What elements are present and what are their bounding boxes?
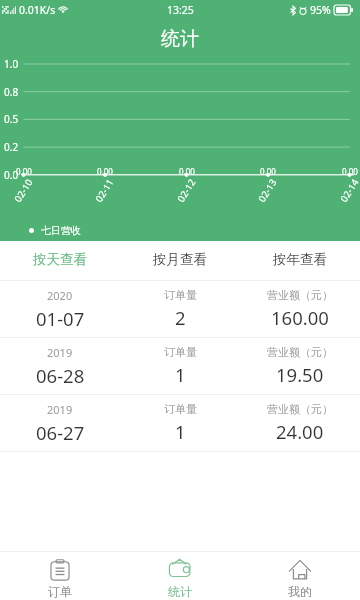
button[interactable]: 统计 [120, 552, 240, 600]
button[interactable]: 2019 [0, 338, 360, 394]
staticText: 0.5 [4, 112, 19, 126]
staticText: 0.8 [4, 85, 19, 99]
staticText: 订单量 [164, 345, 197, 359]
staticText: 我的 [288, 584, 312, 599]
staticText: 按天查看 [33, 251, 87, 268]
staticText: 19.50 [276, 362, 324, 387]
staticText: 0.01K/s [19, 3, 56, 17]
staticText: 1 [175, 419, 186, 444]
staticText: 02-12 [174, 176, 199, 205]
staticText: 按年查看 [273, 251, 327, 268]
staticText: 02-13 [255, 176, 280, 205]
staticText: 1 [175, 362, 186, 387]
staticText: 0.00 [97, 166, 113, 177]
staticText: 统计 [0, 27, 360, 51]
staticText: 02-11 [92, 176, 117, 205]
staticText: 0.00 [260, 166, 276, 177]
staticText: 0.2 [4, 140, 19, 154]
button[interactable]: 我的 [240, 552, 360, 600]
button[interactable]: 按天查看 [0, 241, 120, 280]
staticText: 2019 [47, 402, 73, 417]
staticText: 02-10 [11, 176, 36, 205]
button[interactable]: 2019 [0, 395, 360, 451]
staticText: 2019 [47, 345, 73, 360]
other: 统计 [169, 558, 191, 580]
staticText: 0.00 [179, 166, 195, 177]
staticText: 13:25 [167, 3, 194, 17]
button[interactable]: 按月查看 [120, 241, 240, 280]
button[interactable]: 按年查看 [240, 241, 360, 280]
button[interactable]: 订单 [0, 552, 120, 600]
staticText: 七日营收 [41, 224, 81, 237]
staticText: 营业额（元） [267, 288, 333, 302]
staticText: 01-07 [36, 306, 85, 331]
staticText: 订单量 [164, 288, 197, 302]
other: 订单 [49, 558, 71, 580]
staticText: 02-14 [337, 176, 360, 205]
staticText: 0.0 [4, 168, 19, 182]
other: 我的 [289, 558, 311, 580]
staticText: 06-27 [36, 420, 85, 445]
staticText: 订单 [48, 584, 72, 599]
staticText: 95% [310, 3, 331, 17]
staticText: 按月查看 [153, 251, 207, 268]
staticText: 2020 [47, 288, 73, 303]
staticText: 营业额（元） [267, 402, 333, 416]
staticText: 0.00 [16, 166, 32, 177]
staticText: 160.00 [271, 305, 329, 330]
staticText: 营业额（元） [267, 345, 333, 359]
staticText: 0.00 [342, 166, 358, 177]
staticText: 统计 [168, 584, 192, 599]
staticText: 2 [175, 305, 186, 330]
staticText: 06-28 [36, 363, 85, 388]
button[interactable]: 2020 [0, 281, 360, 337]
staticText: 24.00 [276, 419, 324, 444]
staticText: 1.0 [4, 57, 19, 71]
staticText: 订单量 [164, 402, 197, 416]
